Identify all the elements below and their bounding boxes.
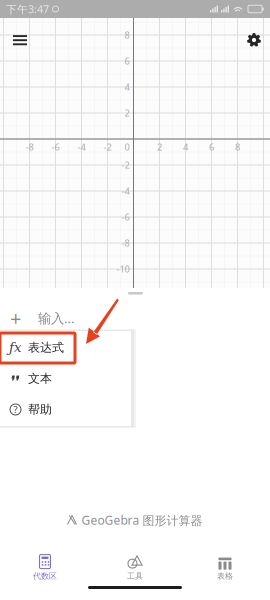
staticText: 表达式 — [28, 340, 64, 355]
staticText: 0 — [124, 141, 129, 153]
staticText: -2 — [121, 159, 129, 171]
staticText: 6 — [209, 141, 214, 153]
staticText: 输入… — [38, 309, 75, 327]
staticText: ? — [13, 403, 17, 416]
staticText: + — [10, 305, 21, 331]
staticText: 2 — [157, 141, 162, 153]
button[interactable]: 工具 — [90, 554, 180, 582]
button[interactable]: 文本 — [0, 363, 131, 394]
staticText: 4 — [183, 141, 188, 153]
staticText: 表格 — [217, 571, 233, 581]
button[interactable]: Settings — [239, 25, 269, 55]
staticText: 帮助 — [28, 402, 52, 417]
staticText: 8 — [235, 141, 240, 153]
staticText: -6 — [121, 211, 129, 223]
staticText: -4 — [121, 185, 129, 197]
staticText: GeoGebra 图形计算器 — [81, 512, 202, 528]
staticText: 文本 — [28, 371, 52, 386]
staticText: 8 — [124, 29, 129, 41]
staticText: 代数区 — [33, 571, 57, 581]
staticText: 4 — [124, 81, 129, 93]
staticText: -2 — [103, 141, 111, 153]
staticText: -4 — [77, 141, 85, 153]
button[interactable]: 表格 — [180, 554, 270, 582]
button[interactable]: + — [0, 305, 133, 331]
staticText: 2 — [124, 107, 129, 119]
button[interactable]: Menu — [5, 27, 35, 53]
staticText: ƒx — [9, 340, 22, 355]
button[interactable]: ƒx — [0, 332, 131, 363]
button[interactable]: ? — [0, 394, 131, 425]
staticText: 下午3:47 — [6, 2, 49, 16]
staticText: -6 — [51, 141, 59, 153]
staticText: 6 — [124, 55, 129, 67]
button[interactable]: 代数区 — [0, 554, 90, 582]
staticText: -8 — [121, 237, 129, 249]
staticText: 工具 — [127, 571, 143, 581]
staticText: -8 — [25, 141, 33, 153]
staticText: -10 — [116, 263, 129, 275]
